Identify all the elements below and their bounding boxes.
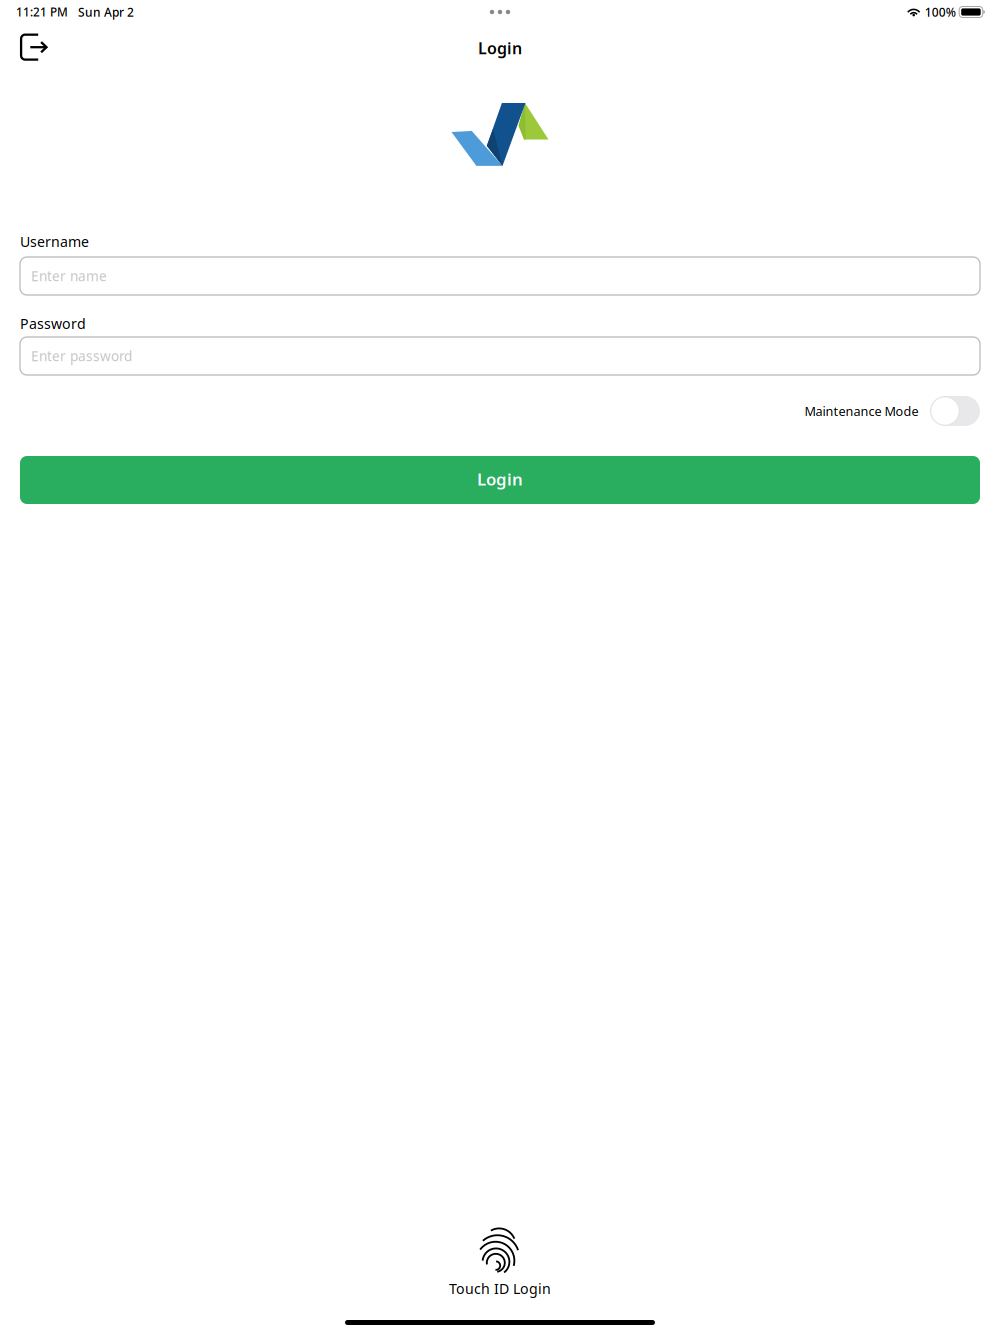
button[interactable]: Touch ID Login	[449, 1222, 551, 1298]
staticText: Enter name	[31, 267, 107, 285]
staticText: Login	[478, 37, 522, 59]
staticText: Username	[20, 232, 89, 251]
button[interactable]: Log out	[18, 23, 50, 64]
staticText: Password	[20, 314, 86, 333]
staticText: Maintenance Mode	[804, 403, 918, 419]
staticText: Touch ID Login	[449, 1279, 551, 1298]
staticText: Sun Apr 2	[78, 4, 134, 20]
staticText: 11:21 PM	[16, 4, 68, 20]
staticText: Enter password	[31, 347, 132, 365]
staticText: 100%	[925, 4, 956, 20]
staticText: Login	[477, 468, 523, 490]
button[interactable]: Login	[20, 456, 980, 504]
button[interactable]: Maintenance Mode	[930, 396, 980, 426]
